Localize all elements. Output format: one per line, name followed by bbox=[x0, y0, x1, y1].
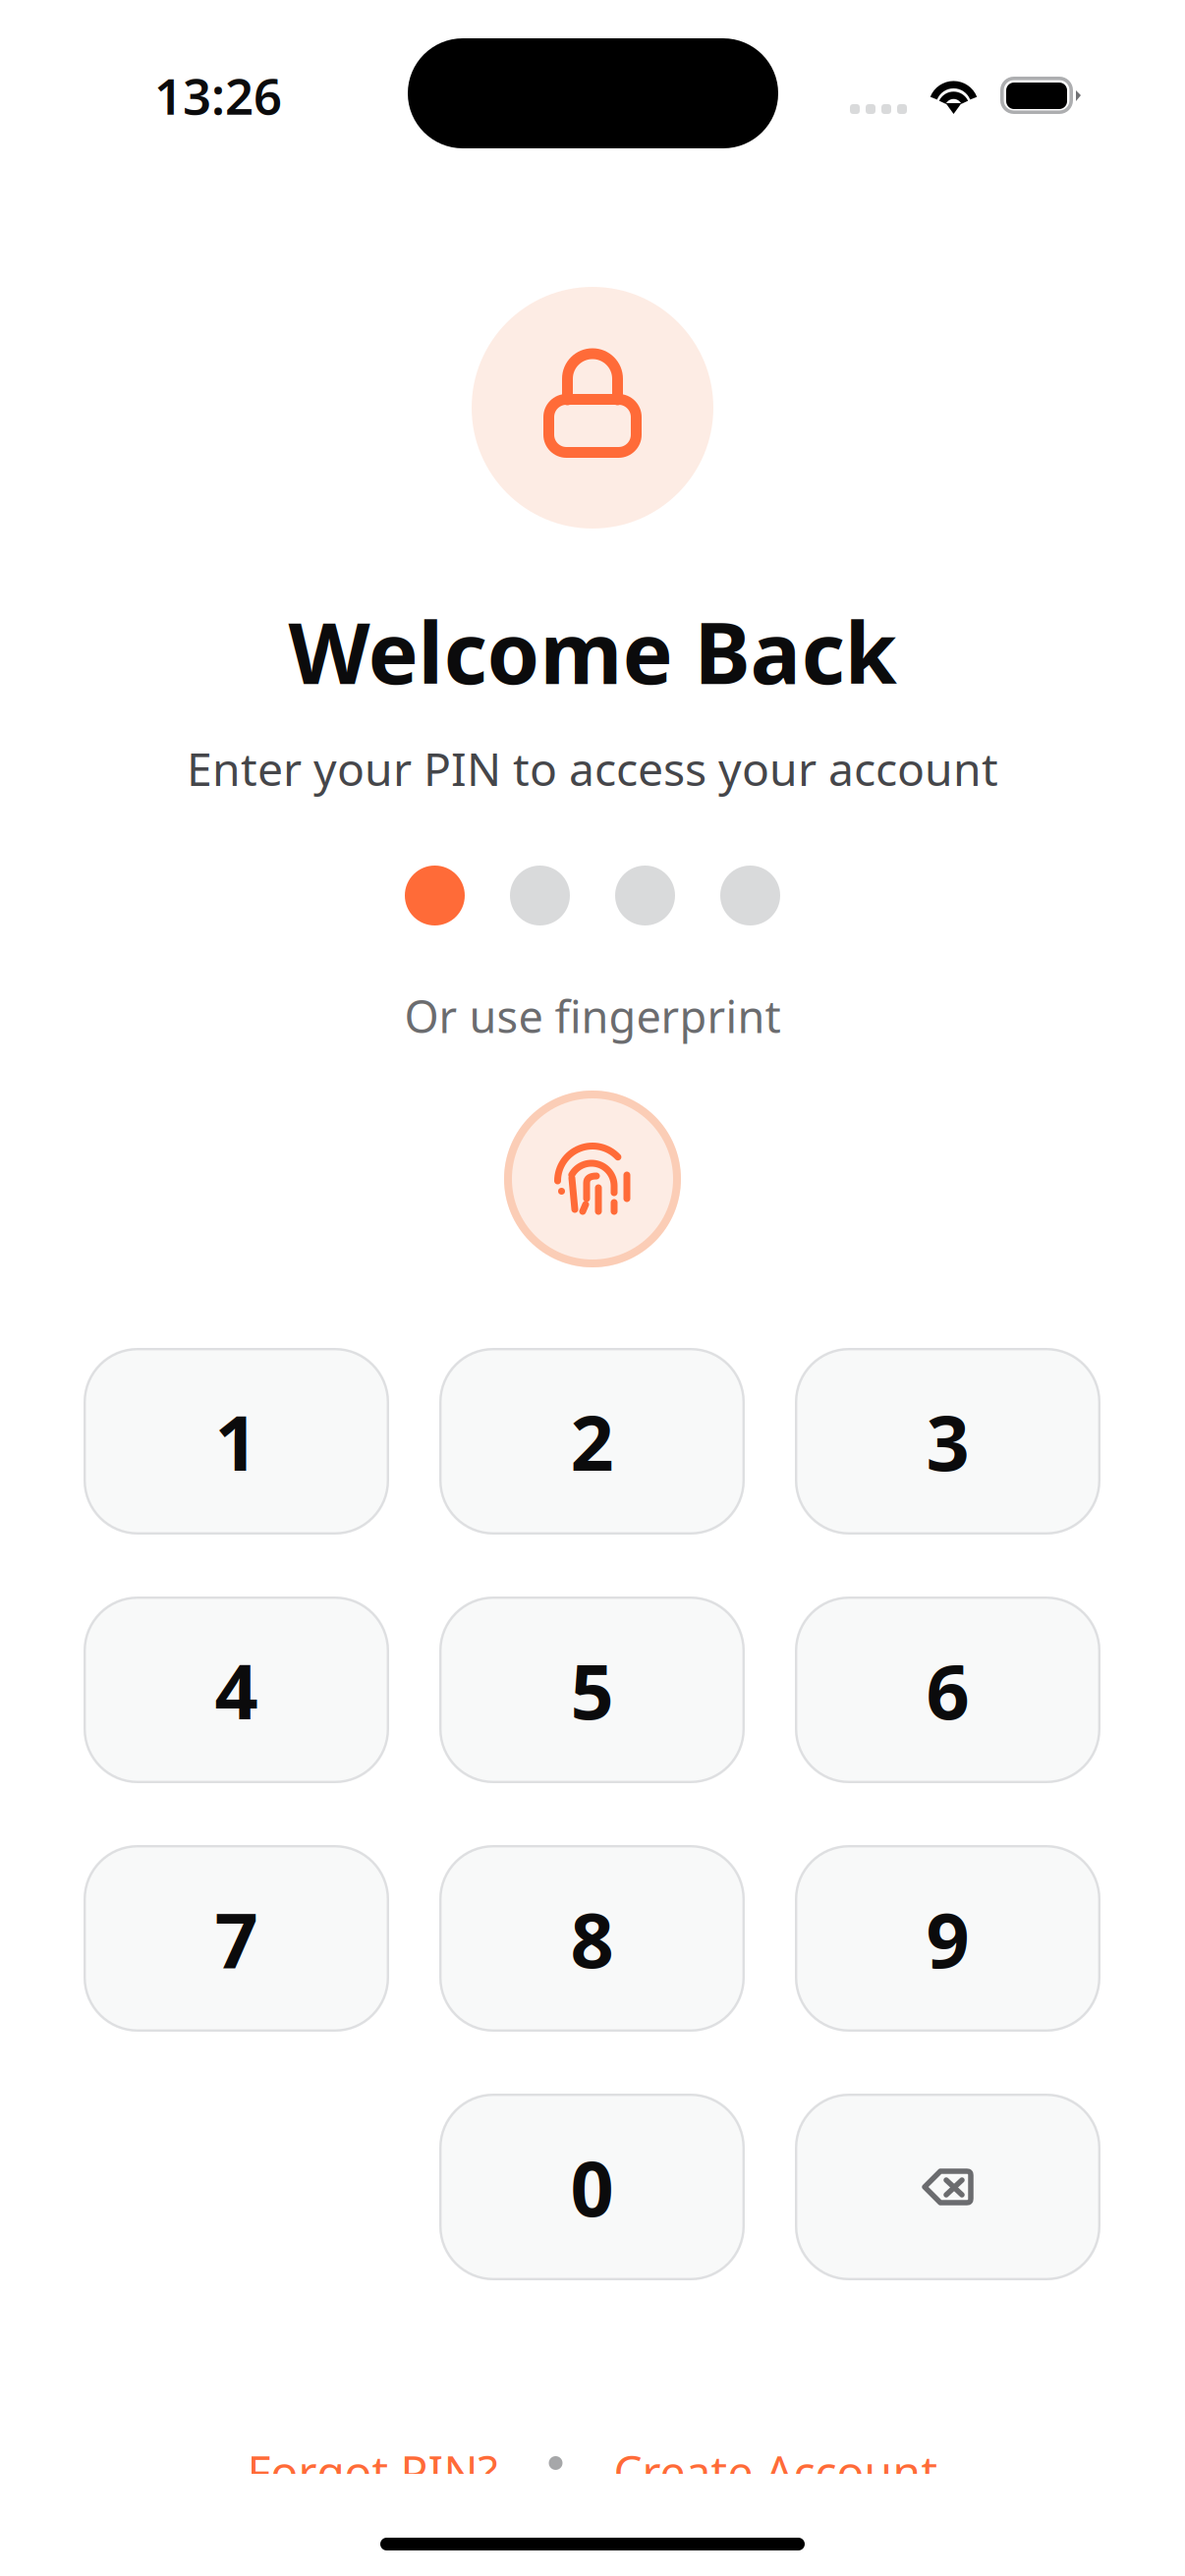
button[interactable]: 7 bbox=[84, 1845, 389, 2032]
button[interactable]: Forgot PIN? bbox=[247, 2440, 498, 2486]
button[interactable]: 1 bbox=[84, 1348, 389, 1535]
staticText: 8 bbox=[570, 1888, 614, 1989]
button[interactable]: Delete bbox=[795, 2094, 1100, 2280]
button[interactable]: 0 bbox=[439, 2094, 745, 2280]
staticText: 1 bbox=[215, 1391, 258, 1492]
staticText: Or use fingerprint bbox=[404, 986, 781, 1046]
staticText: 5 bbox=[570, 1639, 614, 1740]
staticText: Forgot PIN? bbox=[247, 2440, 498, 2502]
staticText: 7 bbox=[215, 1888, 258, 1989]
button[interactable]: 8 bbox=[439, 1845, 745, 2032]
button[interactable]: 9 bbox=[795, 1845, 1100, 2032]
button[interactable]: 6 bbox=[795, 1596, 1100, 1783]
button[interactable]: Use fingerprint bbox=[504, 1091, 681, 1267]
staticText: Create Account bbox=[614, 2440, 938, 2502]
button[interactable]: Create Account bbox=[614, 2440, 938, 2486]
staticText: 3 bbox=[926, 1391, 969, 1492]
staticText: 13:26 bbox=[154, 61, 282, 129]
staticText: 0 bbox=[570, 2137, 614, 2237]
staticText: 2 bbox=[570, 1391, 614, 1492]
button[interactable]: 4 bbox=[84, 1596, 389, 1783]
staticText: 6 bbox=[926, 1639, 969, 1740]
button[interactable]: 5 bbox=[439, 1596, 745, 1783]
staticText: Welcome Back bbox=[288, 594, 897, 709]
staticText: Enter your PIN to access your account bbox=[187, 737, 998, 799]
staticText: 9 bbox=[926, 1888, 969, 1989]
button[interactable]: 3 bbox=[795, 1348, 1100, 1535]
button[interactable]: 2 bbox=[439, 1348, 745, 1535]
staticText: 4 bbox=[215, 1639, 258, 1740]
